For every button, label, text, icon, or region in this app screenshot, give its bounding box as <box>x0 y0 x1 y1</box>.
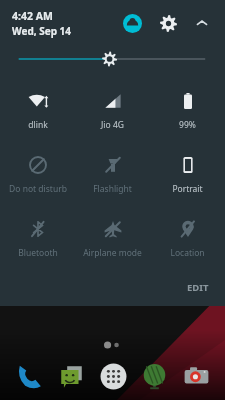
button[interactable]: Do not disturb <box>0 142 75 206</box>
staticText: Jio 4G <box>101 119 124 131</box>
button[interactable]: Brightness <box>0 46 225 72</box>
staticText: Do not disturb <box>9 183 67 195</box>
button[interactable]: Settings <box>155 10 181 36</box>
staticText: Flashlight <box>93 183 132 195</box>
button[interactable]: dlink <box>0 78 75 142</box>
button[interactable]: Camera <box>177 357 215 395</box>
staticText: 4:42 AM <box>12 9 53 23</box>
button[interactable]: Phone <box>10 357 48 395</box>
button[interactable]: Messaging <box>52 357 90 395</box>
staticText: Portrait <box>172 183 203 195</box>
button[interactable]: Flashlight <box>75 142 150 206</box>
button[interactable]: Browser <box>135 357 173 395</box>
button[interactable]: EDIT <box>171 275 225 300</box>
button[interactable]: 99% <box>150 78 225 142</box>
button[interactable]: User <box>119 10 145 36</box>
staticText: EDIT <box>187 281 209 294</box>
staticText: Bluetooth <box>18 247 58 259</box>
staticText: Wed, Sep 14 <box>12 24 72 38</box>
staticText: 99% <box>179 119 196 131</box>
button[interactable]: Apps <box>94 357 132 395</box>
staticText: Location <box>170 247 205 259</box>
button[interactable]: Jio 4G <box>75 78 150 142</box>
staticText: dlink <box>28 119 48 131</box>
button[interactable]: Location <box>150 206 225 270</box>
button[interactable]: Airplane mode <box>75 206 150 270</box>
staticText: Airplane mode <box>83 247 142 259</box>
button[interactable]: Collapse <box>189 10 215 36</box>
button[interactable]: Bluetooth <box>0 206 75 270</box>
button[interactable]: Portrait <box>150 142 225 206</box>
